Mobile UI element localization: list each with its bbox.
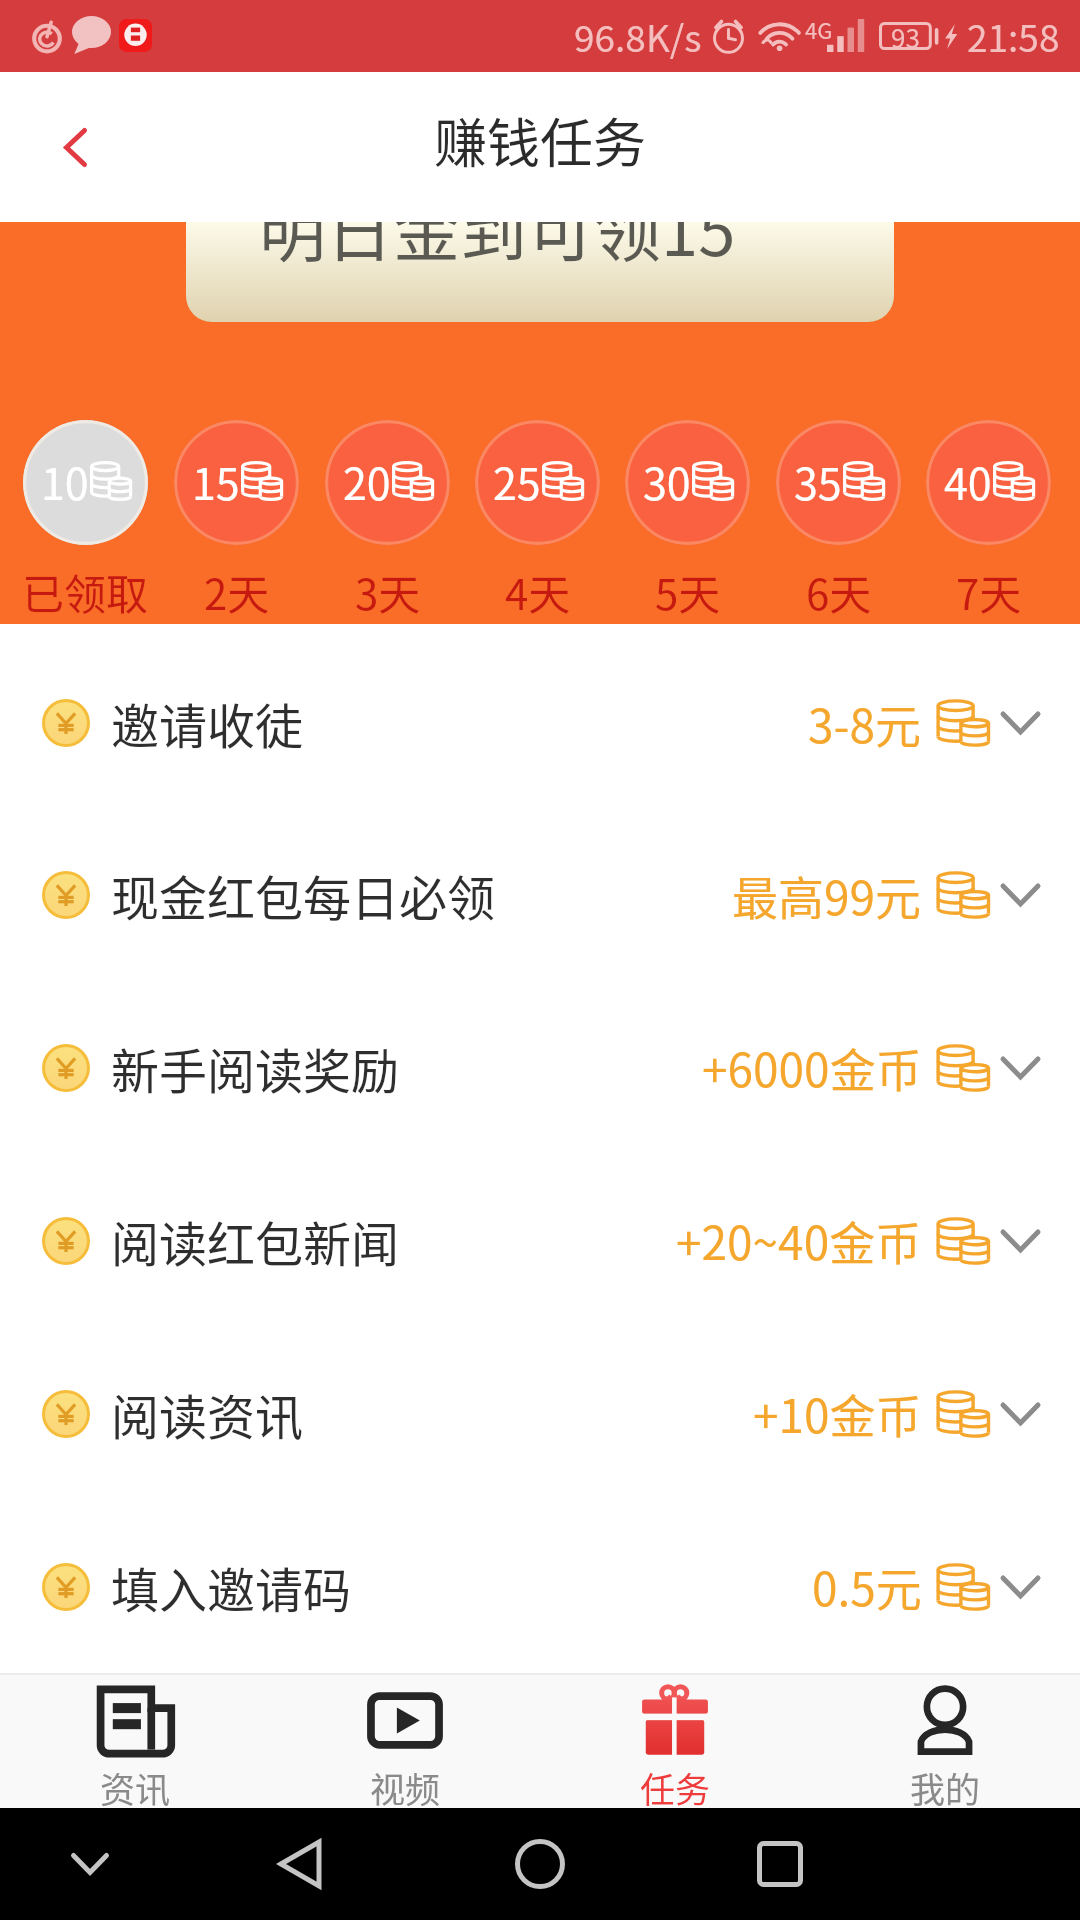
staticText: 赚钱任务: [434, 102, 646, 179]
button[interactable]: Back: [260, 1832, 340, 1896]
staticText: 视频: [370, 1762, 441, 1813]
button[interactable]: 邀请收徒: [0, 637, 1080, 809]
staticText: 现金红包每日必领: [111, 860, 496, 930]
button[interactable]: 填入邀请码: [0, 1500, 1080, 1673]
staticText: 邀请收徒: [111, 688, 304, 758]
staticText: 21:58: [967, 9, 1060, 63]
staticText: 5天: [655, 561, 721, 622]
staticText: 任务: [640, 1762, 711, 1813]
staticText: 15: [192, 450, 240, 512]
staticText: 30: [643, 450, 691, 512]
button[interactable]: Back: [0, 72, 150, 222]
staticText: 我的: [910, 1762, 981, 1813]
staticText: 资讯: [100, 1762, 171, 1813]
staticText: 3-8元: [808, 690, 922, 757]
button[interactable]: Recents: [740, 1832, 820, 1896]
staticText: 3天: [355, 561, 421, 622]
staticText: 明日金到可领15: [259, 222, 736, 275]
button[interactable]: 15: [174, 420, 299, 545]
staticText: 10: [41, 450, 89, 512]
button[interactable]: 新手阅读奖励: [0, 981, 1080, 1154]
button[interactable]: 阅读红包新闻: [0, 1154, 1080, 1327]
staticText: 96.8K/s: [574, 9, 702, 63]
staticText: 0.5元: [812, 1553, 922, 1620]
staticText: 4天: [505, 561, 571, 622]
staticText: 35: [794, 450, 842, 512]
button[interactable]: 阅读资讯: [0, 1327, 1080, 1500]
staticText: 已领取: [22, 561, 149, 622]
button[interactable]: 30: [625, 420, 750, 545]
staticText: 6天: [806, 561, 872, 622]
staticText: 新手阅读奖励: [111, 1033, 400, 1103]
button[interactable]: 资讯: [0, 1675, 270, 1808]
button[interactable]: 明日金到可领15: [186, 222, 894, 322]
staticText: 2天: [204, 561, 270, 622]
button[interactable]: 40: [926, 420, 1051, 545]
button[interactable]: 视频: [270, 1675, 540, 1808]
button[interactable]: Home: [500, 1832, 580, 1896]
button[interactable]: 25: [475, 420, 600, 545]
staticText: 最高99元: [732, 862, 922, 929]
staticText: 25: [493, 450, 541, 512]
button[interactable]: 任务: [540, 1675, 810, 1808]
button[interactable]: 现金红包每日必领: [0, 809, 1080, 981]
button[interactable]: 35: [776, 420, 901, 545]
staticText: +20~40金币: [676, 1207, 922, 1274]
button[interactable]: 我的: [810, 1675, 1080, 1808]
button[interactable]: 10: [23, 420, 148, 545]
staticText: 40: [944, 450, 992, 512]
button[interactable]: Hide keyboard: [50, 1832, 130, 1896]
staticText: 93: [891, 18, 920, 56]
staticText: 阅读资讯: [111, 1379, 304, 1449]
staticText: 填入邀请码: [111, 1552, 352, 1622]
staticText: +6000金币: [702, 1034, 922, 1101]
staticText: +10金币: [753, 1380, 922, 1447]
staticText: 阅读红包新闻: [111, 1206, 400, 1276]
button[interactable]: 20: [325, 420, 450, 545]
staticText: 20: [343, 450, 391, 512]
staticText: 4G: [805, 13, 833, 45]
staticText: 7天: [956, 561, 1022, 622]
